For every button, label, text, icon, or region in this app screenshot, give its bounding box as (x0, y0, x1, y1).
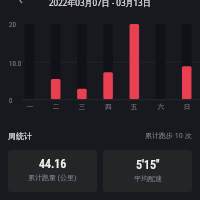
staticText: 日 (177, 103, 197, 111)
staticText: 20 (9, 21, 16, 29)
staticText: 0 (9, 97, 13, 105)
staticText: 二 (46, 103, 66, 111)
staticText: 三 (72, 103, 92, 111)
staticText: 一 (20, 103, 40, 111)
staticText: 44.16 (39, 157, 67, 171)
button[interactable]: 44.16 (8, 150, 97, 192)
button[interactable]: 5'15'' (103, 150, 192, 192)
button[interactable]: Back (14, 0, 28, 6)
staticText: 5'15'' (136, 158, 160, 172)
staticText: 累计跑步 10 次 (145, 131, 192, 141)
staticText: 四 (98, 103, 118, 111)
staticText: 六 (151, 103, 171, 111)
staticText: 累计跑量 (公里) (28, 173, 77, 183)
staticText: 周统计 (8, 131, 32, 141)
staticText: 五 (124, 103, 144, 111)
staticText: 平均配速 (134, 174, 162, 183)
staticText: 2022年03月07日 - 03月13日 (49, 0, 151, 8)
staticText: 10.0 (9, 60, 22, 68)
